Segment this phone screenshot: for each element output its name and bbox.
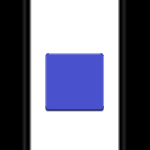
button[interactable]: Card (0, 0, 150, 150)
